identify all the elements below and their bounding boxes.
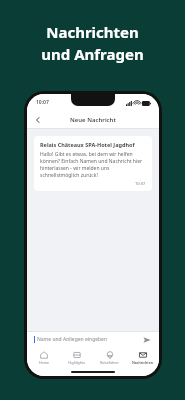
staticText: Neue Nachricht <box>70 116 116 124</box>
staticText: Hallo! Gibt es etwas, bei dem wir helfen… <box>40 151 146 179</box>
staticText: und Anfragen <box>41 44 144 64</box>
staticText: 10:07 <box>135 181 146 186</box>
button[interactable]: Home <box>27 348 60 368</box>
button[interactable]: Name und Anliegen eingeben <box>27 331 159 348</box>
staticText: Nachrichten <box>132 360 154 365</box>
button[interactable]: Zurück <box>31 113 45 127</box>
staticText: Nachrichten <box>46 22 139 42</box>
staticText: Relais Châteaux SPA-Hotel Jagdhof <box>40 141 135 148</box>
button[interactable]: Reiseführer <box>93 348 126 368</box>
button[interactable]: Highlights <box>60 348 93 368</box>
button[interactable]: Relais Châteaux SPA-Hotel Jagdhof <box>34 136 152 191</box>
staticText: Name und Anliegen eingeben <box>37 336 108 343</box>
staticText: Reiseführer <box>100 360 120 365</box>
staticText: Highlights <box>68 360 85 365</box>
button[interactable]: Senden <box>141 334 152 345</box>
staticText: Home <box>39 360 49 365</box>
button[interactable]: Nachrichten <box>126 348 159 368</box>
staticText: 10:07 <box>36 99 49 106</box>
